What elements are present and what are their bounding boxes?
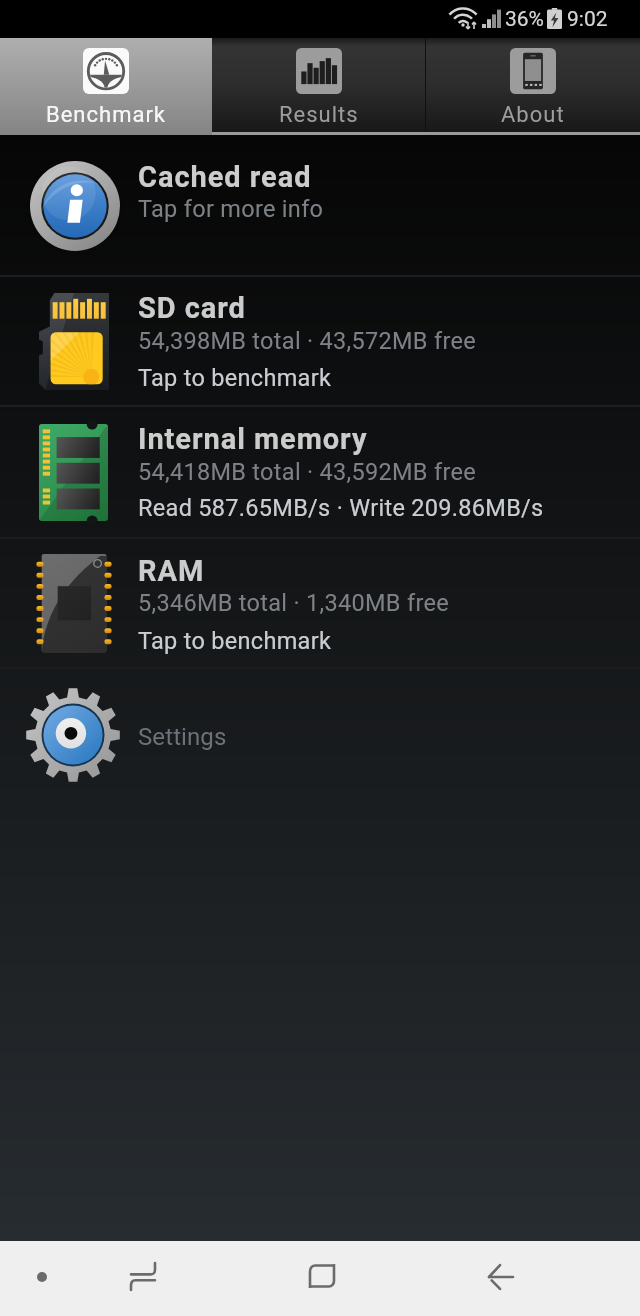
staticText: SD card [138,291,246,325]
staticText: 36% [505,7,544,32]
button[interactable]: Recent apps [100,1241,185,1316]
staticText: Internal memory [138,422,368,456]
staticText: 5,346MB total · 1,340MB free [138,589,449,617]
staticText: Tap to benchmark [138,627,332,655]
staticText: Results [279,102,359,128]
button[interactable]: Menu [0,1241,84,1316]
button[interactable]: RAM [0,539,640,669]
staticText: Tap to benchmark [138,364,332,392]
button[interactable]: SD card [0,277,640,407]
staticText: 54,418MB total · 43,592MB free [138,458,476,486]
staticText: About [501,102,565,128]
staticText: Tap for more info [138,195,324,223]
staticText: Cached read [138,160,312,194]
button[interactable]: Internal memory [0,407,640,539]
button[interactable]: Settings [0,669,640,801]
button[interactable]: About [426,38,640,135]
staticText: 9:02 [567,7,608,32]
staticText: Read 587.65MB/s · Write 209.86MB/s [138,494,544,522]
staticText: RAM [138,554,205,588]
button[interactable]: Home [279,1241,364,1316]
staticText: Settings [138,723,227,751]
button[interactable]: Back [458,1241,543,1316]
button[interactable]: Benchmark [0,38,212,135]
button[interactable]: Cached read [0,135,640,277]
button[interactable]: Results [212,38,426,135]
staticText: 54,398MB total · 43,572MB free [138,327,476,355]
staticText: Benchmark [46,102,167,128]
